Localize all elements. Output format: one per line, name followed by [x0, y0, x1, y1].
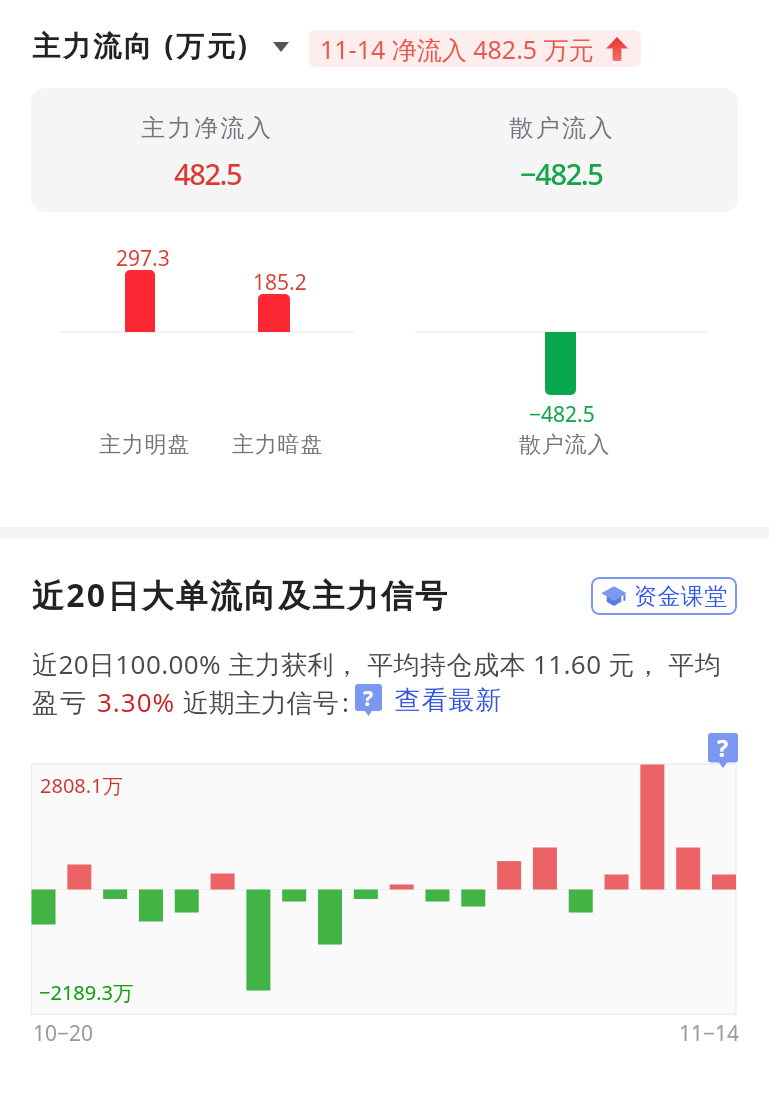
staticText: ? — [717, 732, 729, 764]
staticText: 近20日大单流向及主力信号 — [32, 573, 450, 617]
staticText: 主力流向 (万元) — [32, 26, 250, 64]
button[interactable]: Change period — [268, 34, 294, 60]
button[interactable]: 散户流入 — [384, 113, 738, 193]
staticText: 11-14 净流入 482.5 万元 — [320, 32, 594, 66]
button[interactable]: 主力净流入 — [31, 113, 384, 193]
staticText: 资金课堂 — [634, 582, 728, 611]
button[interactable]: Help — [355, 684, 382, 716]
staticText: −482.5 — [529, 400, 595, 429]
staticText: −482.5 — [520, 154, 603, 193]
staticText: 297.3 — [116, 244, 170, 273]
staticText: 185.2 — [253, 268, 307, 297]
button[interactable]: 主力流向 (万元) — [32, 26, 250, 64]
button[interactable]: 资金课堂 — [591, 577, 737, 615]
staticText: 查看最新 — [394, 684, 502, 717]
staticText: 散户流入 — [508, 113, 614, 143]
staticText: 3.30% — [97, 684, 176, 719]
staticText: 盈亏 — [32, 684, 97, 720]
staticText: 11−14 — [679, 1019, 740, 1048]
button[interactable]: 查看最新 — [394, 684, 502, 717]
button[interactable]: 11-14 净流入 482.5 万元 — [309, 30, 641, 67]
staticText: −2189.3万 — [39, 979, 133, 1006]
staticText: 主力暗盘 — [232, 431, 324, 459]
staticText: 主力明盘 — [99, 431, 191, 459]
staticText: 近期主力信号 — [176, 684, 339, 720]
button[interactable]: Help — [708, 733, 738, 768]
staticText: ? — [363, 683, 374, 712]
staticText: 2808.1万 — [40, 772, 123, 799]
staticText: 散户流入 — [519, 431, 611, 459]
button[interactable]: 近20日大单流向及主力信号 — [32, 573, 450, 617]
staticText: 482.5 — [174, 154, 242, 193]
staticText: : — [342, 684, 349, 719]
staticText: 近20日100.00% 主力获利， 平均持仓成本 11.60 元， 平均 — [32, 646, 722, 682]
staticText: 主力净流入 — [141, 113, 274, 143]
staticText: 10−20 — [33, 1019, 94, 1048]
